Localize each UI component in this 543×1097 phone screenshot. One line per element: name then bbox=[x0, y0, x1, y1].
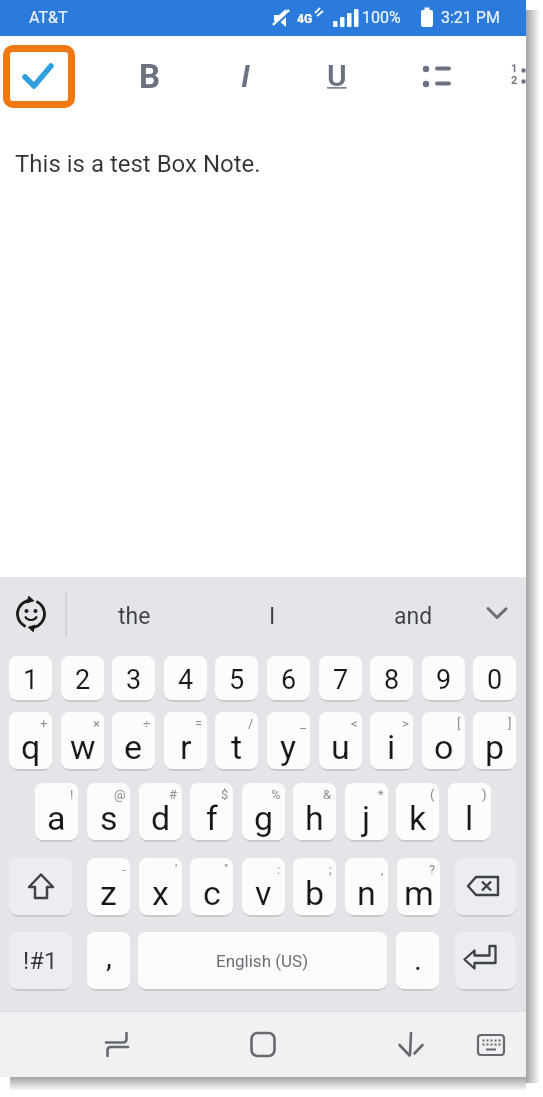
button[interactable] bbox=[383, 1015, 439, 1073]
button[interactable]: 7 bbox=[319, 656, 362, 700]
button[interactable]: 3 bbox=[112, 656, 155, 700]
button[interactable] bbox=[10, 592, 55, 637]
staticText: ! bbox=[70, 787, 74, 802]
staticText: AT&T bbox=[29, 8, 68, 27]
button[interactable]: c bbox=[190, 858, 233, 915]
staticText: h bbox=[305, 798, 324, 838]
button[interactable] bbox=[466, 1015, 516, 1073]
staticText: * bbox=[378, 787, 384, 802]
button[interactable]: p bbox=[473, 712, 516, 769]
button[interactable]: h bbox=[293, 783, 336, 840]
button[interactable]: I bbox=[222, 590, 322, 642]
button[interactable]: b bbox=[293, 858, 336, 915]
staticText: : bbox=[277, 862, 281, 877]
staticText: z bbox=[100, 873, 117, 913]
button[interactable]: e bbox=[112, 712, 155, 769]
button[interactable]: and bbox=[363, 590, 463, 642]
staticText: b bbox=[305, 873, 325, 913]
staticText: s bbox=[100, 798, 118, 838]
button[interactable]: . bbox=[396, 932, 439, 989]
button[interactable]: y bbox=[267, 712, 310, 769]
button[interactable]: v bbox=[242, 858, 285, 915]
button[interactable]: i bbox=[370, 712, 413, 769]
button[interactable]: 6 bbox=[267, 656, 310, 700]
button[interactable] bbox=[235, 1015, 291, 1073]
staticText: v bbox=[255, 873, 272, 913]
button[interactable]: , bbox=[87, 932, 130, 989]
button[interactable] bbox=[498, 52, 526, 100]
button[interactable]: r bbox=[164, 712, 207, 769]
button[interactable]: !#1 bbox=[9, 932, 72, 989]
staticText: the bbox=[118, 603, 151, 630]
button[interactable] bbox=[3, 45, 75, 108]
button[interactable]: a bbox=[35, 783, 78, 840]
button[interactable]: n bbox=[345, 858, 388, 915]
staticText: 3 bbox=[126, 664, 142, 696]
button[interactable]: 2 bbox=[61, 656, 104, 700]
staticText: & bbox=[323, 787, 332, 802]
staticText: q bbox=[21, 727, 41, 767]
staticText: ? bbox=[429, 862, 436, 877]
button[interactable] bbox=[90, 1015, 146, 1073]
staticText: j bbox=[362, 798, 371, 838]
staticText: , bbox=[381, 862, 384, 877]
staticText: 4G bbox=[297, 12, 313, 26]
staticText: 2 bbox=[75, 664, 91, 696]
staticText: + bbox=[40, 716, 48, 731]
button[interactable] bbox=[474, 592, 519, 637]
staticText: 100% bbox=[362, 8, 401, 27]
staticText: m bbox=[404, 873, 434, 913]
button[interactable]: f bbox=[190, 783, 233, 840]
button[interactable] bbox=[9, 858, 72, 915]
button[interactable]: x bbox=[139, 858, 182, 915]
button[interactable]: 0 bbox=[473, 656, 516, 700]
staticText: ] bbox=[508, 716, 512, 731]
button[interactable]: 8 bbox=[370, 656, 413, 700]
button[interactable]: l bbox=[448, 783, 491, 840]
button[interactable]: I bbox=[233, 57, 263, 97]
button[interactable]: u bbox=[319, 712, 362, 769]
button[interactable]: 5 bbox=[215, 656, 258, 700]
button[interactable]: g bbox=[242, 783, 285, 840]
staticText: a bbox=[47, 798, 66, 838]
button[interactable]: d bbox=[139, 783, 182, 840]
button[interactable]: z bbox=[87, 858, 130, 915]
button[interactable]: m bbox=[397, 858, 440, 915]
staticText: k bbox=[409, 798, 427, 838]
button[interactable] bbox=[455, 932, 516, 989]
staticText: ' bbox=[175, 862, 178, 877]
button[interactable] bbox=[455, 858, 516, 915]
button[interactable]: w bbox=[61, 712, 104, 769]
button[interactable]: 9 bbox=[422, 656, 465, 700]
button[interactable]: English (US) bbox=[138, 932, 387, 989]
staticText: 5 bbox=[229, 664, 245, 696]
staticText: ÷ bbox=[143, 716, 151, 731]
staticText: y bbox=[280, 727, 297, 767]
button[interactable]: o bbox=[422, 712, 465, 769]
button[interactable]: j bbox=[345, 783, 388, 840]
button[interactable]: q bbox=[9, 712, 52, 769]
button[interactable]: k bbox=[396, 783, 439, 840]
staticText: This is a test Box Note. bbox=[15, 150, 261, 178]
button[interactable] bbox=[410, 52, 464, 100]
staticText: [ bbox=[457, 716, 461, 731]
staticText: = bbox=[195, 716, 203, 731]
button[interactable]: U bbox=[325, 58, 355, 98]
button[interactable]: s bbox=[87, 783, 130, 840]
button[interactable]: t bbox=[215, 712, 258, 769]
button[interactable]: the bbox=[84, 590, 184, 642]
staticText: ; bbox=[329, 862, 332, 877]
staticText: f bbox=[206, 798, 218, 838]
staticText: i bbox=[387, 727, 396, 767]
staticText: d bbox=[151, 798, 171, 838]
staticText: 9 bbox=[436, 664, 452, 696]
button[interactable]: 4 bbox=[164, 656, 207, 700]
staticText: _ bbox=[300, 716, 306, 731]
button[interactable]: 1 bbox=[9, 656, 52, 700]
button[interactable]: B bbox=[137, 57, 169, 97]
staticText: n bbox=[357, 873, 376, 913]
staticText: c bbox=[203, 873, 221, 913]
staticText: @ bbox=[114, 787, 126, 802]
staticText: - bbox=[122, 862, 126, 877]
staticText: 8 bbox=[384, 664, 400, 696]
